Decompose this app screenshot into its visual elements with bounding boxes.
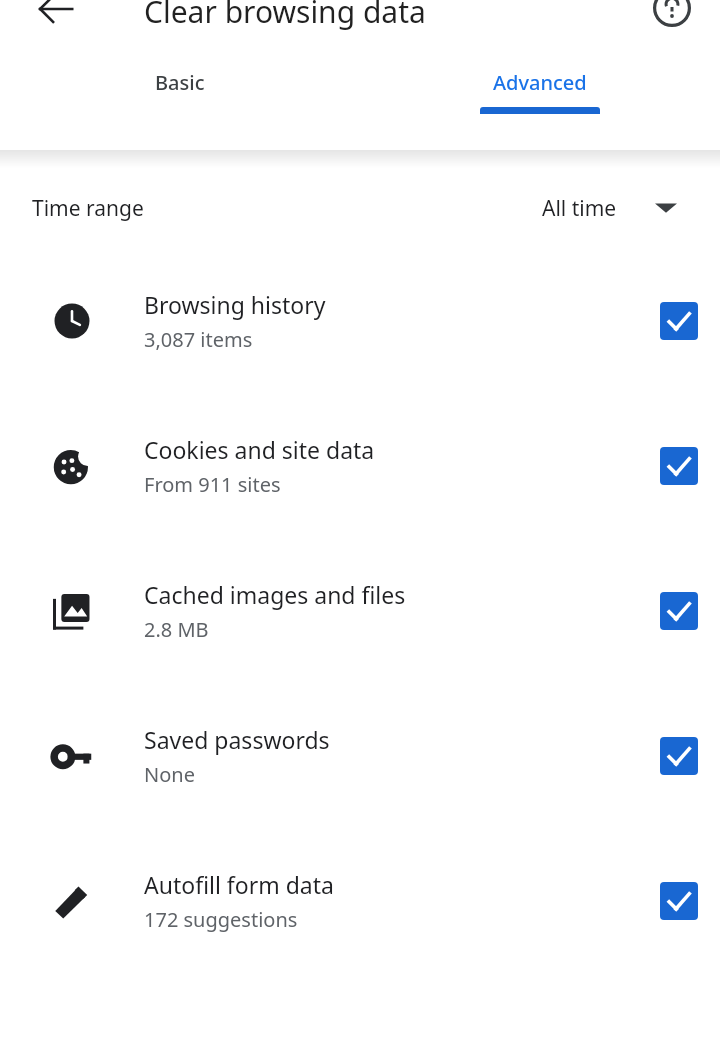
staticText: Time range (32, 194, 144, 223)
staticText: Basic (155, 69, 205, 96)
staticText: 2.8 MB (144, 616, 209, 643)
staticText: 172 suggestions (144, 906, 298, 933)
button[interactable]: Saved passwords (660, 737, 698, 775)
staticText: None (144, 761, 195, 788)
button[interactable]: Navigate up (20, 0, 92, 35)
button[interactable]: Cached images and files (0, 538, 720, 683)
button[interactable]: Advanced (360, 52, 720, 160)
button[interactable]: Autofill form data (0, 828, 720, 973)
button[interactable]: Browsing history (660, 302, 698, 340)
staticText: Cached images and files (144, 579, 406, 610)
staticText: Clear browsing data (144, 0, 426, 32)
staticText: Autofill form data (144, 869, 334, 900)
button[interactable]: Browsing history (0, 248, 720, 393)
button[interactable]: Cookies and site data (660, 447, 698, 485)
button[interactable]: Time range (0, 168, 720, 248)
staticText: Cookies and site data (144, 434, 375, 465)
button[interactable]: Saved passwords (0, 683, 720, 828)
button[interactable]: Help & feedback (636, 0, 708, 34)
staticText: Saved passwords (144, 724, 330, 755)
staticText: From 911 sites (144, 471, 281, 498)
staticText: 3,087 items (144, 326, 253, 353)
button[interactable]: Basic (0, 52, 360, 160)
staticText: All time (542, 194, 617, 223)
button[interactable]: Autofill form data (660, 882, 698, 920)
staticText: Advanced (493, 69, 587, 96)
button[interactable]: Cookies and site data (0, 393, 720, 538)
staticText: Browsing history (144, 289, 326, 320)
button[interactable]: Cached images and files (660, 592, 698, 630)
